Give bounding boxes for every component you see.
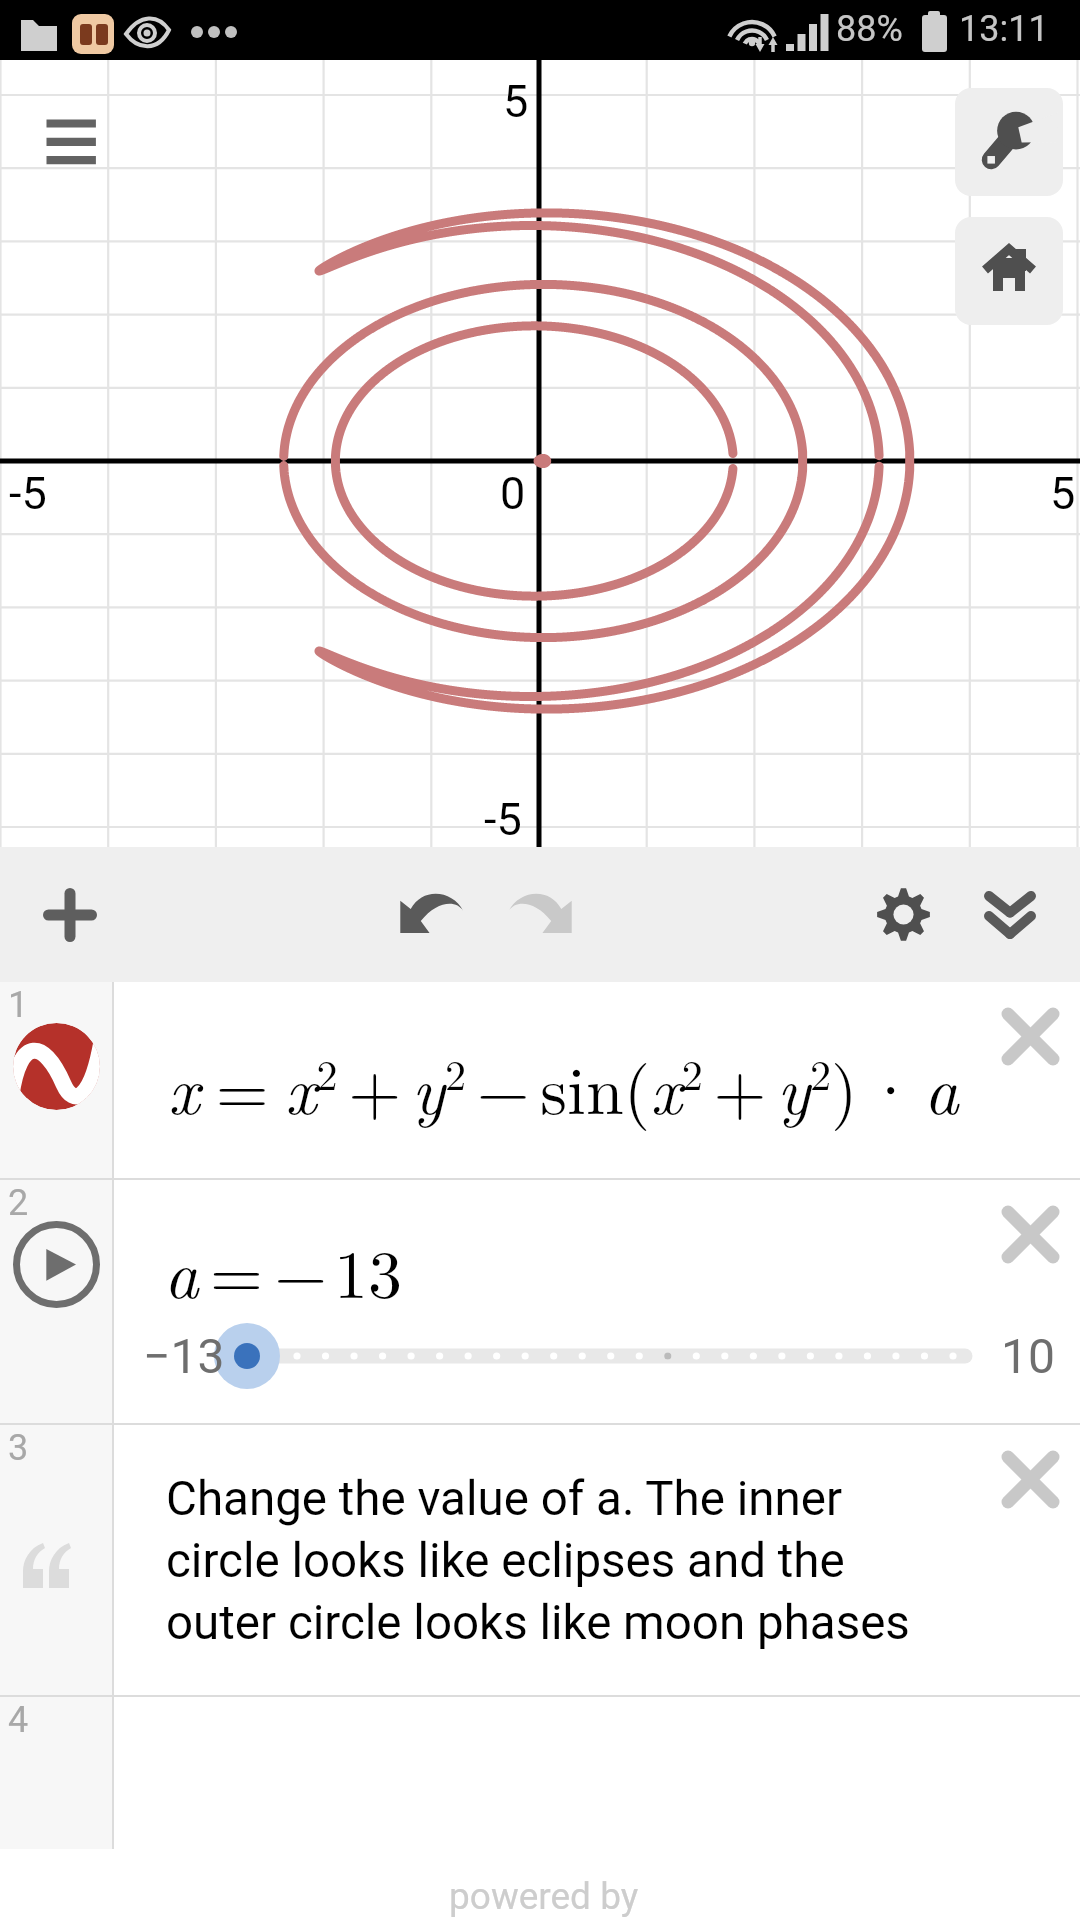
button[interactable]: Graph settings xyxy=(955,88,1063,196)
button[interactable]: Settings xyxy=(848,847,958,982)
button[interactable]: Delete expression 2 xyxy=(1002,1206,1059,1263)
button[interactable]: 2 xyxy=(0,1180,1080,1425)
staticText: -5 xyxy=(9,467,47,520)
staticText: 13:11 xyxy=(959,8,1049,50)
button[interactable]: Home view xyxy=(955,217,1063,325)
button[interactable]: 1 xyxy=(0,982,1080,1180)
staticText: 2 xyxy=(8,1182,29,1224)
button[interactable]: Collapse list xyxy=(955,847,1065,982)
staticText: 5 xyxy=(503,75,529,128)
staticText: Change the value of a. The inner circle … xyxy=(166,1471,910,1651)
button[interactable]: Undo xyxy=(376,847,486,982)
button[interactable]: Redo xyxy=(485,847,595,982)
staticText: 5 xyxy=(1050,467,1076,520)
staticText: −13 xyxy=(143,1328,225,1384)
button[interactable]: 4 xyxy=(0,1697,1080,1849)
staticText: 4 xyxy=(8,1699,29,1741)
button[interactable]: Add expression xyxy=(14,847,126,982)
button[interactable]: Delete expression 3 xyxy=(1002,1451,1059,1508)
button[interactable]: Menu xyxy=(24,106,116,186)
staticText: 88% xyxy=(836,8,903,50)
staticText: x = x2 + y2 − sin(x2 + y2) · a xyxy=(168,1037,970,1133)
staticText: powered by xyxy=(449,1875,639,1918)
staticText: 10 xyxy=(1001,1328,1055,1384)
button[interactable]: 3 xyxy=(0,1425,1080,1697)
staticText: 1 xyxy=(8,984,29,1026)
staticText: -5 xyxy=(484,793,522,846)
staticText: 3 xyxy=(8,1427,29,1469)
staticText: a = − 13 xyxy=(164,1221,402,1317)
button[interactable]: Delete expression 1 xyxy=(1002,1008,1059,1065)
staticText: 0 xyxy=(500,467,526,520)
